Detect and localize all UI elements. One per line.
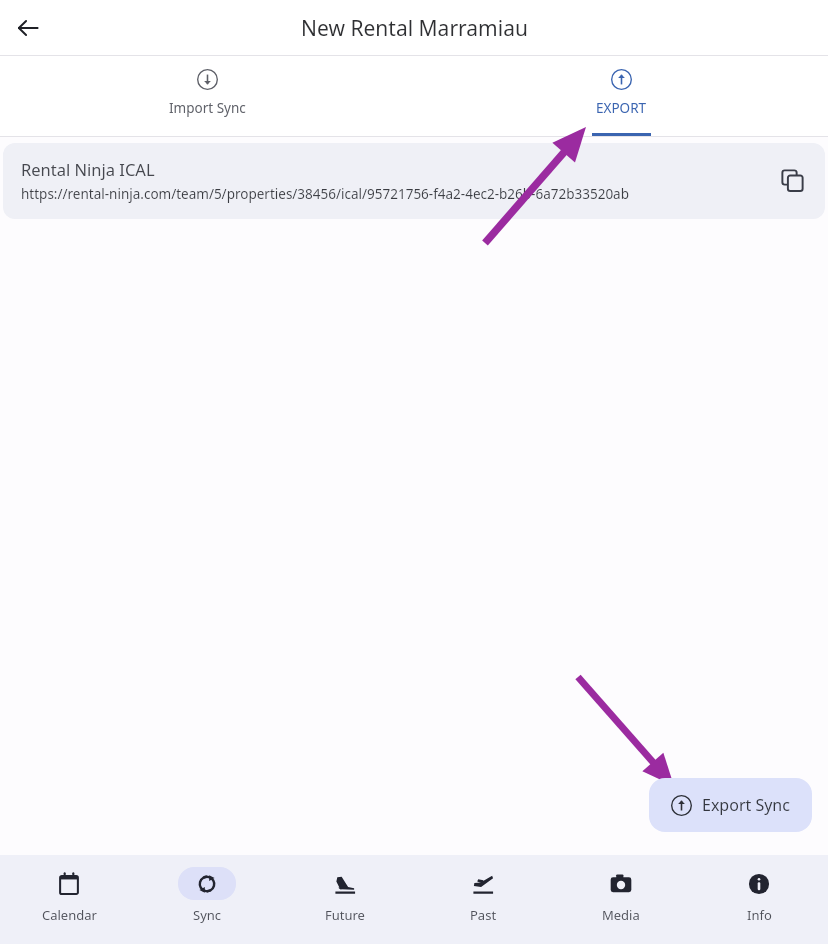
button[interactable]: Calendar (0, 855, 138, 944)
staticText: New Rental Marramiau (301, 14, 528, 43)
button[interactable]: Info (690, 855, 828, 944)
staticText: Sync (193, 906, 222, 924)
button[interactable]: Media (552, 855, 690, 944)
button[interactable]: Rental Ninja ICAL (3, 143, 825, 219)
button[interactable]: Back (4, 4, 52, 52)
staticText: Export Sync (702, 794, 790, 816)
staticText: EXPORT (596, 99, 647, 117)
button[interactable]: Copy link (769, 157, 815, 203)
staticText: Media (602, 906, 640, 924)
button[interactable]: Export Sync (649, 778, 812, 832)
staticText: https://rental-ninja.com/team/5/properti… (21, 185, 629, 203)
button[interactable]: Sync (138, 855, 276, 944)
staticText: Info (747, 906, 772, 924)
staticText: Future (325, 906, 365, 924)
staticText: Past (470, 906, 497, 924)
button[interactable]: Import Sync (0, 56, 414, 137)
staticText: Import Sync (169, 99, 246, 117)
staticText: Calendar (42, 906, 97, 924)
button[interactable]: EXPORT (414, 56, 828, 137)
button[interactable]: Future (276, 855, 414, 944)
button[interactable]: Past (414, 855, 552, 944)
staticText: Rental Ninja ICAL (21, 158, 155, 180)
